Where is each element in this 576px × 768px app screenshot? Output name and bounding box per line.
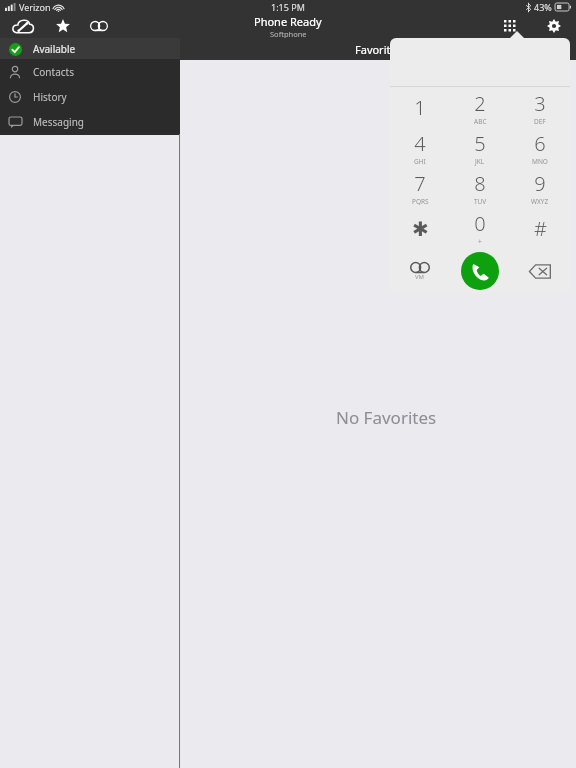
staticText: 0 xyxy=(474,210,486,237)
button[interactable]: 6 xyxy=(510,128,570,168)
staticText: MNO xyxy=(532,157,548,166)
button[interactable]: Settings xyxy=(540,15,568,37)
staticText: 7 xyxy=(414,170,426,197)
staticText: Softphone xyxy=(270,29,307,38)
button[interactable]: 5 xyxy=(450,128,510,168)
staticText: 1 xyxy=(414,94,426,121)
button[interactable]: Voicemail xyxy=(390,248,450,294)
staticText: + xyxy=(478,237,482,246)
staticText: WXYZ xyxy=(531,197,549,206)
button[interactable]: 2 xyxy=(450,87,510,128)
button[interactable]: 4 xyxy=(390,128,450,168)
staticText: ABC xyxy=(474,117,487,126)
button[interactable]: 1 xyxy=(390,87,450,128)
staticText: Favorites xyxy=(355,42,402,57)
staticText: Messaging xyxy=(33,115,84,129)
staticText: JKL xyxy=(475,157,485,166)
button[interactable]: 8 xyxy=(450,168,510,208)
staticText: PQRS xyxy=(412,197,429,206)
button[interactable]: Messaging xyxy=(0,109,180,134)
staticText: 8 xyxy=(474,170,486,197)
button[interactable]: 3 xyxy=(510,87,570,128)
staticText: 3 xyxy=(534,90,546,117)
staticText: DEF xyxy=(534,117,546,126)
staticText: TUV xyxy=(474,197,487,206)
button[interactable]: ✱ xyxy=(390,208,450,248)
button[interactable]: Dialpad xyxy=(496,15,524,37)
staticText: Verizon xyxy=(19,1,51,13)
staticText: # xyxy=(534,215,547,242)
staticText: 6 xyxy=(534,130,546,157)
staticText: 5 xyxy=(474,130,486,157)
staticText: Contacts xyxy=(33,65,74,79)
staticText: History xyxy=(33,90,67,104)
button[interactable]: Call xyxy=(461,252,499,290)
button[interactable]: 0 xyxy=(450,208,510,248)
button[interactable]: Favorites xyxy=(50,15,76,37)
button[interactable]: Available xyxy=(0,38,180,59)
staticText: ✱ xyxy=(412,217,429,240)
button[interactable]: Contacts xyxy=(0,59,180,84)
staticText: 1:15 PM xyxy=(271,1,305,13)
button[interactable]: # xyxy=(510,208,570,248)
staticText: 2 xyxy=(474,90,486,117)
staticText: Phone Ready xyxy=(254,14,322,29)
staticText: GHI xyxy=(414,157,426,166)
button[interactable] xyxy=(390,38,570,86)
staticText: 4 xyxy=(414,130,426,157)
button[interactable]: 9 xyxy=(510,168,570,208)
button[interactable]: 7 xyxy=(390,168,450,208)
staticText: 43% xyxy=(534,1,552,13)
staticText: No Favorites xyxy=(336,406,437,429)
staticText: Available xyxy=(33,42,76,56)
button[interactable]: Voicemail xyxy=(86,15,112,37)
button[interactable]: Cloud presence xyxy=(8,15,38,37)
button[interactable]: Backspace xyxy=(510,248,570,294)
staticText: 9 xyxy=(534,170,546,197)
button[interactable]: History xyxy=(0,84,180,109)
staticText: VM xyxy=(415,273,425,281)
